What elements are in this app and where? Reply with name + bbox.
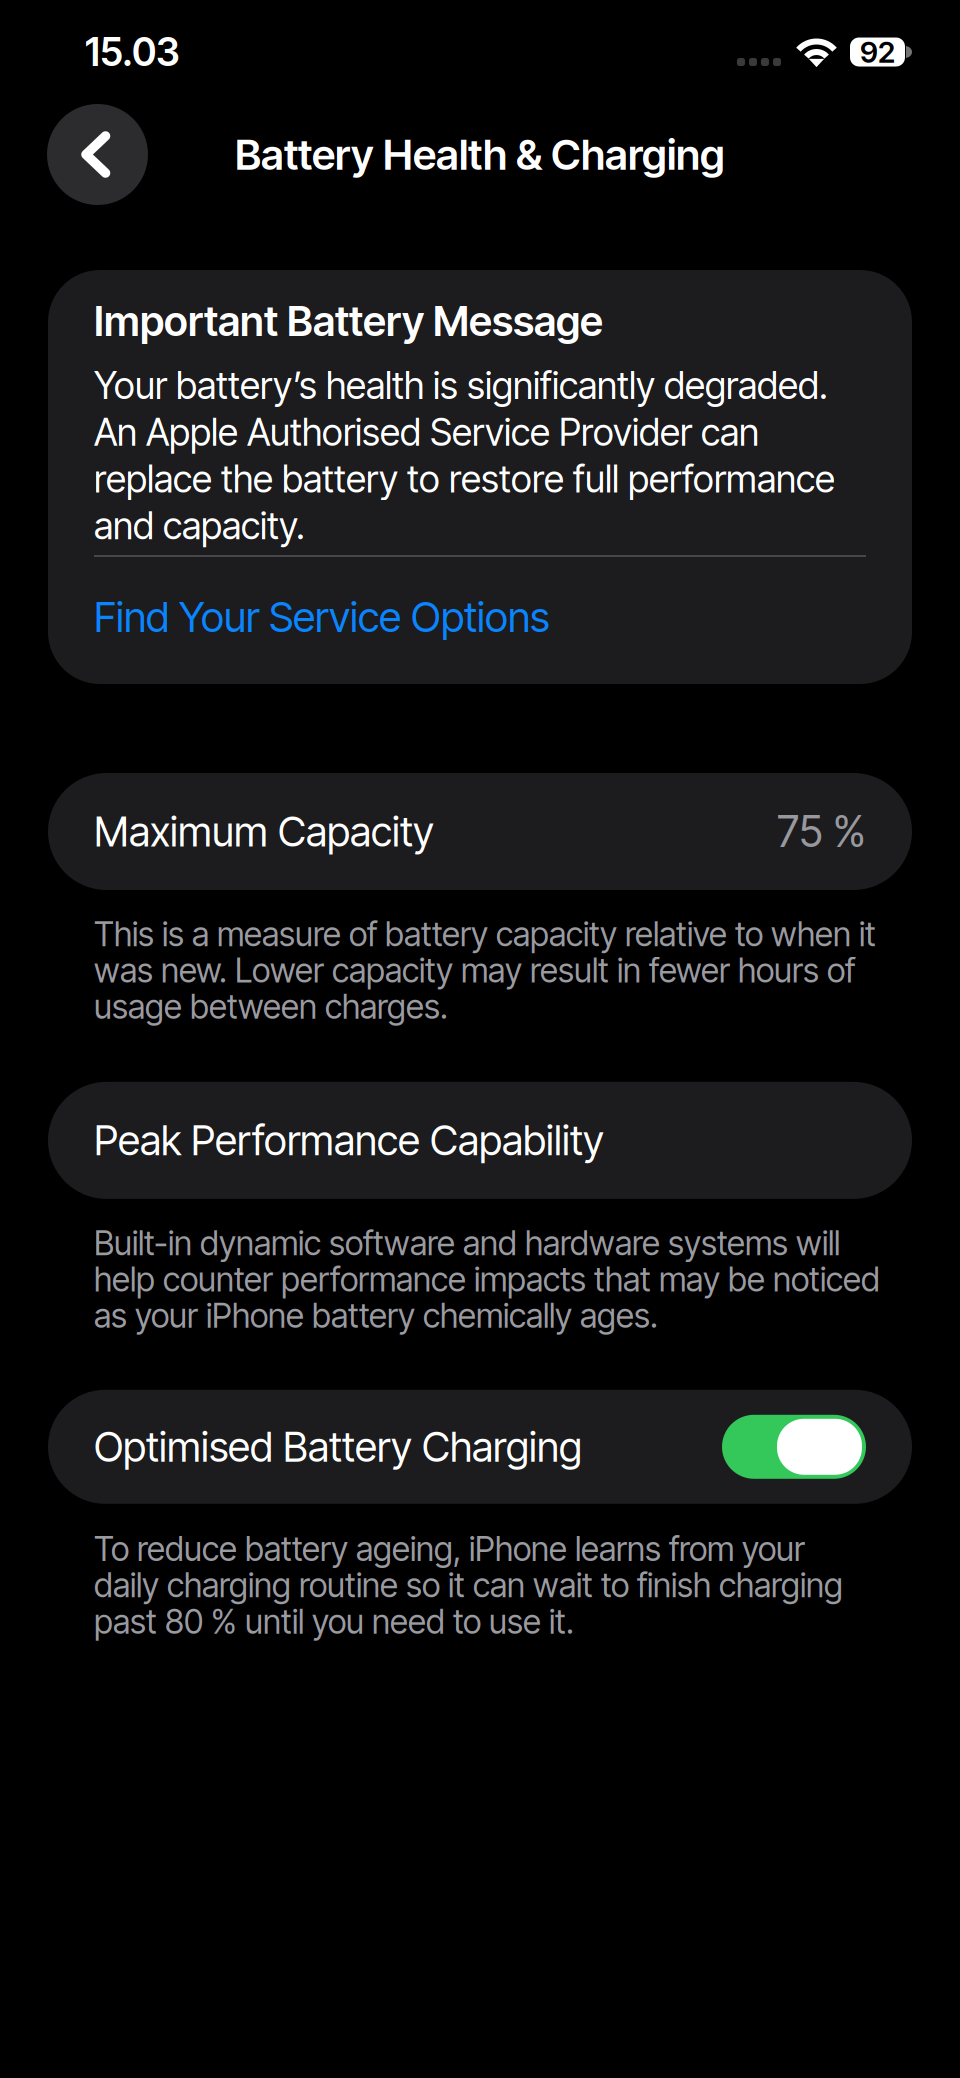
button[interactable]: Optimised Battery Charging: [722, 1415, 866, 1479]
button[interactable]: Back: [47, 104, 148, 205]
button[interactable]: Find Your Service Options: [94, 592, 866, 642]
button[interactable]: Peak Performance Capability: [48, 1082, 912, 1199]
staticText: Optimised Battery Charging: [94, 1422, 582, 1471]
staticText: This is a measure of battery capacity re…: [94, 916, 876, 1025]
staticText: Maximum Capacity: [94, 807, 434, 856]
staticText: Your battery’s health is significantly d…: [94, 362, 835, 549]
staticText: Find Your Service Options: [94, 592, 550, 642]
staticText: Built-in dynamic software and hardware s…: [94, 1225, 880, 1334]
staticText: Battery Health & Charging: [235, 129, 725, 180]
staticText: 75 %: [777, 806, 866, 857]
staticText: To reduce battery ageing, iPhone learns …: [94, 1531, 843, 1640]
staticText: 92: [860, 34, 895, 70]
staticText: 15.03: [85, 29, 180, 75]
staticText: Important Battery Message: [94, 296, 603, 346]
staticText: Peak Performance Capability: [94, 1116, 604, 1165]
